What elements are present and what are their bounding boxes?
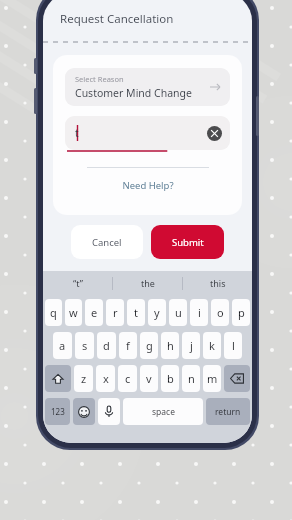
staticText: h bbox=[167, 338, 174, 353]
staticText: k bbox=[209, 338, 215, 353]
staticText: the bbox=[141, 277, 155, 289]
staticText: g bbox=[146, 338, 153, 353]
staticText: q bbox=[50, 305, 57, 320]
button[interactable]: Dictation bbox=[98, 398, 120, 425]
staticText: Submit bbox=[172, 236, 204, 249]
button[interactable]: Clear text bbox=[207, 126, 222, 141]
button[interactable]: y bbox=[148, 299, 166, 326]
button[interactable]: h bbox=[161, 332, 179, 359]
button[interactable]: z bbox=[74, 365, 93, 392]
button[interactable]: n bbox=[182, 365, 200, 392]
button[interactable]: Cancel bbox=[71, 225, 143, 259]
button[interactable]: Numbers bbox=[45, 398, 70, 425]
button[interactable]: space bbox=[123, 398, 203, 425]
staticText: v bbox=[146, 371, 152, 386]
button[interactable]: x bbox=[96, 365, 115, 392]
staticText: o bbox=[217, 305, 224, 320]
staticText: d bbox=[103, 338, 110, 353]
staticText: t bbox=[134, 305, 138, 320]
staticText: Request Cancellation bbox=[60, 11, 174, 27]
button[interactable]: m bbox=[203, 365, 221, 392]
staticText: e bbox=[91, 305, 98, 320]
staticText: a bbox=[59, 338, 66, 353]
button[interactable]: Select Reason bbox=[65, 68, 230, 106]
staticText: f bbox=[126, 338, 130, 353]
staticText: x bbox=[103, 371, 109, 386]
staticText: this bbox=[210, 277, 226, 289]
button[interactable]: q bbox=[45, 299, 62, 326]
button[interactable]: o bbox=[211, 299, 229, 326]
staticText: n bbox=[188, 371, 195, 386]
button[interactable]: t bbox=[65, 116, 230, 150]
button[interactable]: w bbox=[65, 299, 82, 326]
staticText: “t” bbox=[73, 277, 83, 289]
staticText: return bbox=[215, 406, 241, 418]
button[interactable]: Need Help? bbox=[65, 179, 230, 192]
button[interactable]: Shift bbox=[45, 365, 71, 392]
staticText: r bbox=[113, 305, 118, 320]
button[interactable]: b bbox=[161, 365, 179, 392]
staticText: Cancel bbox=[92, 236, 122, 249]
button[interactable]: Emoji bbox=[73, 398, 95, 425]
button[interactable]: e bbox=[85, 299, 103, 326]
staticText: i bbox=[198, 305, 201, 320]
button[interactable]: the bbox=[113, 271, 182, 295]
button[interactable]: u bbox=[169, 299, 187, 326]
button[interactable]: i bbox=[190, 299, 208, 326]
staticText: u bbox=[175, 305, 182, 320]
button[interactable]: Return bbox=[206, 398, 250, 425]
button[interactable]: r bbox=[106, 299, 124, 326]
button[interactable]: k bbox=[203, 332, 221, 359]
button[interactable]: l bbox=[224, 332, 242, 359]
button[interactable]: this bbox=[183, 271, 252, 295]
staticText: space bbox=[152, 406, 175, 418]
button[interactable]: a bbox=[53, 332, 72, 359]
staticText: Customer Mind Change bbox=[75, 86, 192, 100]
staticText: l bbox=[232, 338, 235, 353]
button[interactable]: v bbox=[140, 365, 158, 392]
button[interactable]: g bbox=[140, 332, 158, 359]
staticText: w bbox=[69, 305, 78, 320]
staticText: s bbox=[82, 338, 88, 353]
button[interactable]: d bbox=[97, 332, 116, 359]
button[interactable]: t bbox=[127, 299, 145, 326]
staticText: c bbox=[125, 371, 131, 386]
staticText: j bbox=[190, 338, 193, 353]
staticText: m bbox=[207, 371, 218, 386]
button[interactable]: Submit bbox=[151, 225, 224, 259]
staticText: z bbox=[81, 371, 87, 386]
staticText: b bbox=[167, 371, 174, 386]
button[interactable]: c bbox=[118, 365, 137, 392]
button[interactable]: j bbox=[182, 332, 200, 359]
staticText: p bbox=[238, 305, 245, 320]
staticText: t bbox=[75, 126, 79, 140]
button[interactable]: p bbox=[232, 299, 250, 326]
button[interactable]: s bbox=[75, 332, 94, 359]
staticText: Need Help? bbox=[122, 179, 174, 192]
staticText: y bbox=[154, 305, 160, 320]
button[interactable]: f bbox=[119, 332, 137, 359]
staticText: Select Reason bbox=[75, 74, 124, 84]
button[interactable]: Backspace bbox=[224, 365, 250, 392]
staticText: 123 bbox=[51, 406, 65, 417]
button[interactable]: “t” bbox=[43, 271, 112, 295]
